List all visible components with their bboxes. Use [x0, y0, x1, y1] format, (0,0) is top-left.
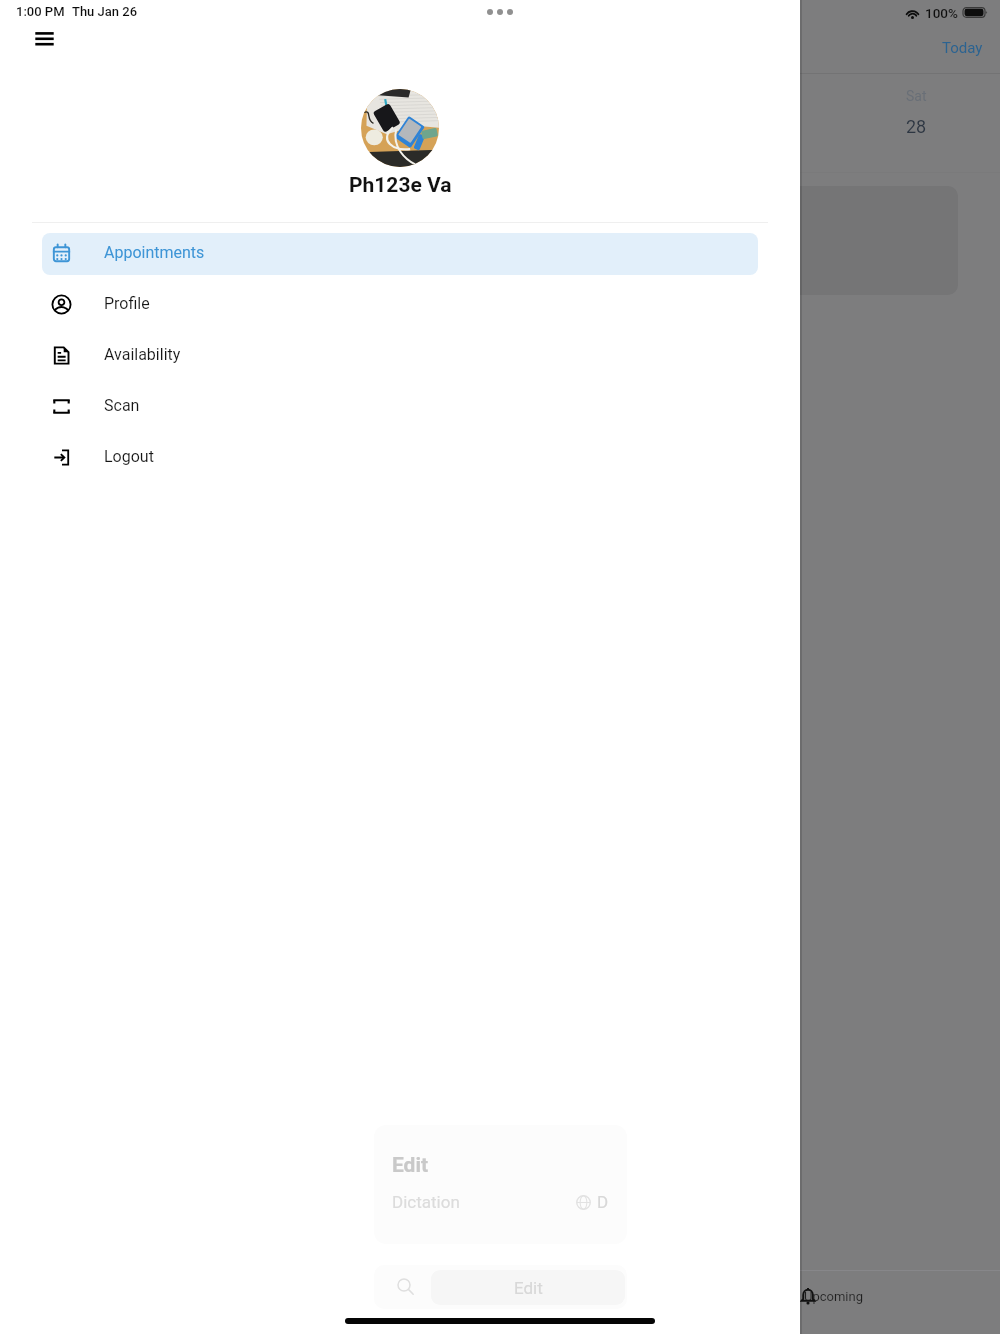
staticText: Thu Jan 26 — [72, 4, 138, 19]
staticText: Upcoming — [804, 1289, 863, 1304]
button[interactable]: Availability — [42, 335, 758, 377]
staticText: Logout — [104, 447, 154, 466]
button[interactable]: Scan — [42, 386, 758, 428]
staticText: Edit — [514, 1278, 543, 1298]
staticText: Dictation — [392, 1192, 460, 1212]
staticText: Edit — [392, 1153, 429, 1178]
button[interactable]: Today — [800, 25, 1000, 70]
button[interactable]: Upcoming — [800, 1280, 1000, 1312]
staticText: D — [597, 1192, 609, 1212]
button[interactable]: Open navigation menu — [28, 23, 60, 55]
button[interactable]: Multitasking controls — [487, 9, 513, 15]
staticText: 28 — [906, 116, 927, 137]
staticText: Ph123e Va — [349, 173, 452, 198]
staticText: Sat — [906, 88, 927, 104]
button[interactable]: Profile — [42, 284, 758, 326]
staticText: Profile — [104, 294, 150, 313]
button[interactable]: Appointments — [42, 233, 758, 275]
staticText: 100% — [925, 5, 958, 21]
staticText: Appointments — [104, 243, 205, 262]
button[interactable]: Logout — [42, 437, 758, 479]
staticText: Availability — [104, 345, 181, 364]
staticText: Today — [942, 39, 983, 57]
staticText: Scan — [104, 396, 140, 415]
staticText: 1:00 PM — [16, 4, 65, 19]
button[interactable]: Edit — [431, 1270, 625, 1305]
button[interactable]: Search — [374, 1265, 414, 1309]
